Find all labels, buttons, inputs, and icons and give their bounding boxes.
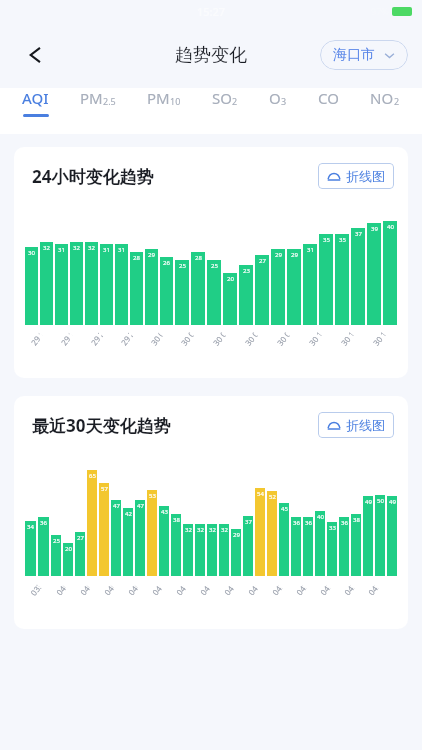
- staticText: 29 23: [118, 331, 135, 348]
- button[interactable]: 海口市: [320, 40, 408, 70]
- staticText: 2: [394, 95, 400, 107]
- button[interactable]: SO: [210, 88, 240, 117]
- button[interactable]: CO: [316, 88, 341, 117]
- staticText: 2.5: [103, 95, 116, 107]
- staticText: 30 09: [274, 330, 291, 348]
- staticText: 20: [65, 545, 72, 553]
- staticText: NO: [370, 88, 394, 108]
- staticText: 43: [161, 508, 168, 516]
- staticText: 31: [58, 246, 65, 254]
- staticText: 57: [101, 485, 108, 493]
- staticText: 0420: [269, 583, 284, 598]
- staticText: 30 05: [210, 330, 227, 348]
- button[interactable]: Back: [16, 35, 56, 75]
- button[interactable]: NO: [368, 88, 402, 117]
- staticText: 29 21: [88, 331, 105, 348]
- staticText: 40: [387, 223, 394, 231]
- staticText: 27: [77, 534, 84, 542]
- staticText: 36: [305, 519, 312, 527]
- staticText: 45: [281, 505, 288, 513]
- staticText: 50: [377, 497, 384, 505]
- staticText: 25: [211, 262, 218, 270]
- staticText: 29: [148, 251, 155, 259]
- staticText: 折线图: [346, 168, 385, 184]
- staticText: 20: [227, 275, 234, 283]
- staticText: 31: [103, 246, 110, 254]
- button[interactable]: O: [267, 88, 289, 117]
- staticText: 29: [291, 251, 298, 259]
- staticText: 34: [27, 523, 34, 531]
- staticText: 32: [88, 244, 95, 252]
- staticText: 36: [341, 519, 348, 527]
- staticText: 0331: [27, 582, 43, 598]
- staticText: 31: [307, 246, 314, 254]
- staticText: 0410: [149, 583, 164, 598]
- staticText: 0402: [53, 583, 68, 598]
- staticText: 42: [125, 510, 132, 518]
- staticText: 30: [28, 249, 35, 257]
- staticText: 30 07: [242, 330, 259, 348]
- staticText: 0418: [245, 583, 260, 598]
- staticText: 2: [232, 95, 238, 107]
- button[interactable]: PM: [145, 88, 183, 117]
- button[interactable]: AQI: [20, 88, 51, 117]
- staticText: 26: [163, 259, 170, 267]
- button[interactable]: PM: [78, 88, 118, 117]
- staticText: 35: [339, 236, 346, 244]
- staticText: 32: [209, 526, 216, 534]
- staticText: 49: [389, 498, 396, 506]
- staticText: 23: [243, 267, 250, 275]
- staticText: 0424: [317, 583, 332, 598]
- staticText: PM: [80, 88, 103, 108]
- staticText: 0428: [365, 583, 380, 598]
- staticText: 30 11: [306, 330, 323, 348]
- staticText: 30 13: [338, 330, 355, 348]
- staticText: 40: [317, 513, 324, 521]
- staticText: 30 15: [370, 330, 387, 348]
- staticText: 32: [73, 244, 80, 252]
- staticText: 24小时变化趋势: [32, 165, 154, 188]
- staticText: 31: [118, 246, 125, 254]
- staticText: SO: [212, 88, 232, 108]
- staticText: 54: [257, 490, 264, 498]
- staticText: 38: [173, 516, 180, 524]
- staticText: 0414: [197, 583, 212, 598]
- staticText: 29 17: [28, 331, 45, 348]
- button[interactable]: 折线图: [318, 163, 394, 189]
- staticText: AQI: [22, 88, 49, 108]
- staticText: 25: [179, 262, 186, 270]
- staticText: O: [269, 88, 281, 108]
- staticText: 29 19: [58, 331, 75, 348]
- staticText: 37: [355, 230, 362, 238]
- staticText: 0416: [221, 583, 236, 598]
- staticText: 39: [371, 225, 378, 233]
- staticText: 折线图: [346, 417, 385, 433]
- staticText: 28: [195, 254, 202, 262]
- staticText: 28: [133, 254, 140, 262]
- staticText: 36: [293, 519, 300, 527]
- staticText: 0426: [341, 583, 356, 598]
- staticText: 最近30天变化趋势: [32, 414, 171, 437]
- staticText: CO: [318, 88, 339, 108]
- staticText: 49: [365, 498, 372, 506]
- staticText: 33: [329, 524, 336, 532]
- staticText: 0404: [77, 583, 92, 598]
- staticText: 海口市: [333, 46, 375, 64]
- staticText: 32: [43, 244, 50, 252]
- staticText: 30 01: [148, 331, 165, 348]
- staticText: 65: [89, 472, 96, 480]
- staticText: 25: [53, 537, 60, 545]
- staticText: 32: [197, 526, 204, 534]
- staticText: 47: [137, 502, 144, 510]
- staticText: 35: [323, 236, 330, 244]
- staticText: 53: [149, 492, 156, 500]
- staticText: 27: [259, 257, 266, 265]
- staticText: 36: [40, 519, 47, 527]
- staticText: 0408: [125, 583, 140, 598]
- staticText: 29: [233, 531, 240, 539]
- staticText: 29: [275, 251, 282, 259]
- button[interactable]: 折线图: [318, 412, 394, 438]
- staticText: 趋势变化: [175, 44, 247, 67]
- staticText: 10: [170, 95, 181, 107]
